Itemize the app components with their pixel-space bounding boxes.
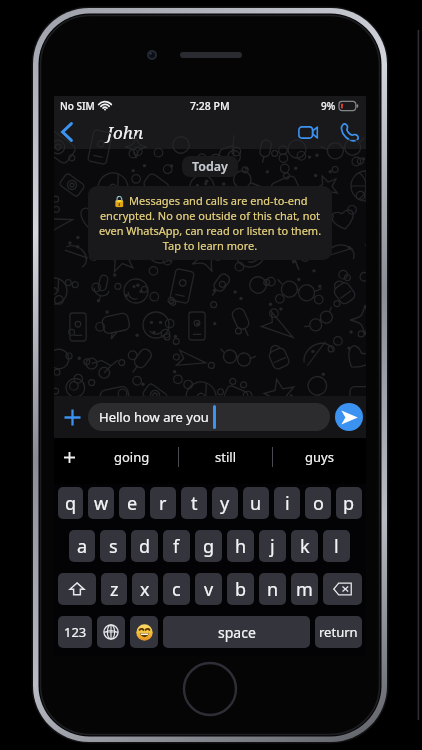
staticText: i xyxy=(285,491,290,516)
button[interactable]: guys xyxy=(273,438,366,484)
staticText: g xyxy=(203,534,215,559)
staticText: Hello how are you xyxy=(99,408,209,426)
staticText: going xyxy=(114,448,150,466)
staticText: q xyxy=(65,491,77,516)
staticText: d xyxy=(139,534,151,559)
button[interactable]: p xyxy=(336,487,362,519)
staticText: encrypted. No one outside of this chat, … xyxy=(97,208,323,223)
button[interactable]: n xyxy=(259,573,286,605)
button[interactable]: w xyxy=(88,487,114,519)
button[interactable]: z xyxy=(101,573,127,605)
staticText: j xyxy=(270,534,275,559)
staticText: v xyxy=(204,577,214,602)
button[interactable]: still xyxy=(179,438,272,484)
staticText: m xyxy=(296,577,313,602)
staticText: s xyxy=(109,534,118,559)
button[interactable]: q xyxy=(58,487,83,519)
button[interactable]: y xyxy=(212,487,238,519)
staticText: y xyxy=(220,491,230,516)
staticText: x xyxy=(140,577,150,602)
button[interactable]: k xyxy=(291,530,318,562)
staticText: n xyxy=(267,577,279,602)
staticText: c xyxy=(172,577,181,602)
staticText: l xyxy=(334,534,339,559)
button[interactable]: d xyxy=(131,530,158,562)
staticText: even WhatsApp, can read or listen to the… xyxy=(97,223,323,238)
staticText: John xyxy=(107,121,144,144)
button[interactable]: u xyxy=(243,487,269,519)
staticText: guys xyxy=(305,448,334,466)
button[interactable]: o xyxy=(305,487,331,519)
staticText: p xyxy=(343,491,355,516)
staticText: 7:28 PM xyxy=(190,99,230,113)
button[interactable]: e xyxy=(119,487,145,519)
staticText: k xyxy=(300,534,310,559)
button[interactable]: t xyxy=(181,487,207,519)
button[interactable]: l xyxy=(323,530,350,562)
button[interactable]: r xyxy=(150,487,176,519)
button[interactable]: c xyxy=(163,573,190,605)
staticText: 9% xyxy=(321,99,336,113)
button[interactable]: Back xyxy=(54,115,80,149)
button[interactable]: Video call xyxy=(292,115,324,149)
button[interactable]: s xyxy=(100,530,126,562)
staticText: o xyxy=(313,491,324,516)
staticText: z xyxy=(110,577,119,602)
button[interactable]: Send xyxy=(335,403,363,431)
button[interactable]: Change keyboard xyxy=(97,616,125,648)
button[interactable]: Today xyxy=(192,158,228,175)
button[interactable]: h xyxy=(227,530,254,562)
button[interactable]: going xyxy=(85,438,178,484)
staticText: u xyxy=(250,491,262,516)
button[interactable]: b xyxy=(227,573,254,605)
staticText: Today xyxy=(192,158,228,175)
button[interactable]: m xyxy=(291,573,318,605)
button[interactable]: a xyxy=(69,530,95,562)
button[interactable]: 🔒 Messages and calls are end-to-end xyxy=(88,186,332,260)
button[interactable]: Hello how are you xyxy=(88,403,330,431)
button[interactable]: Attach xyxy=(57,399,88,435)
staticText: w xyxy=(94,491,109,516)
staticText: b xyxy=(235,577,247,602)
staticText: f xyxy=(173,534,180,559)
staticText: space xyxy=(218,623,256,642)
button[interactable]: Backspace xyxy=(323,573,362,605)
staticText: h xyxy=(235,534,247,559)
button[interactable]: i xyxy=(274,487,300,519)
staticText: a xyxy=(77,534,88,559)
button[interactable]: j xyxy=(259,530,286,562)
button[interactable]: v xyxy=(195,573,222,605)
button[interactable]: Voice call xyxy=(333,115,365,149)
staticText: 🔒 Messages and calls are end-to-end xyxy=(97,193,323,208)
staticText: 123 xyxy=(64,623,87,641)
staticText: Tap to learn more. xyxy=(97,238,323,253)
button[interactable]: x xyxy=(132,573,158,605)
button[interactable]: g xyxy=(195,530,222,562)
staticText: still xyxy=(215,448,236,466)
button[interactable]: space xyxy=(163,616,310,648)
button[interactable]: Shift xyxy=(58,573,96,605)
staticText: return xyxy=(319,623,358,641)
button[interactable]: Add suggestion xyxy=(54,438,85,484)
staticText: r xyxy=(159,491,167,516)
staticText: t xyxy=(191,491,198,516)
button[interactable]: Emoji xyxy=(130,616,158,648)
button[interactable]: return xyxy=(315,616,362,648)
staticText: No SIM xyxy=(60,99,95,113)
button[interactable]: f xyxy=(163,530,190,562)
button[interactable]: 123 xyxy=(58,616,92,648)
staticText: e xyxy=(127,491,138,516)
